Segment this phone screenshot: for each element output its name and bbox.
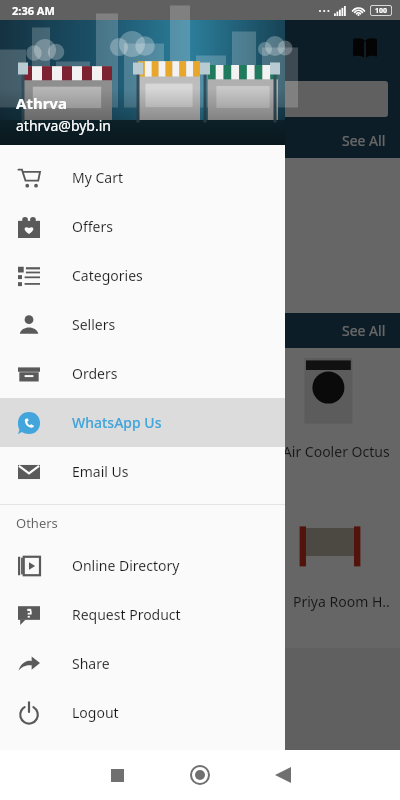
button[interactable]: Email Us [0,447,285,496]
button[interactable]: Sellers [0,300,285,349]
button[interactable]: Orders [0,349,285,398]
staticText: Categories [72,266,143,285]
staticText: See All [342,131,386,150]
button[interactable]: My Cart [0,153,285,202]
button[interactable]: Priya Room H.. [0,498,400,648]
button[interactable]: Recent apps [95,753,139,797]
button[interactable]: Back [261,753,305,797]
staticText: athrva@byb.in [16,116,111,135]
staticText: Others [16,514,58,532]
button[interactable]: Symphony Diet 22i Personal Air Cooler Oc… [0,348,400,498]
staticText: Orders [72,364,118,383]
button[interactable]: Categories [0,251,285,300]
button[interactable]: Online Directory [0,541,285,590]
button[interactable]: See All [342,321,386,340]
staticText: Priya Room H.. [293,592,390,611]
staticText: WhatsApp Us [72,413,162,432]
staticText: See All [342,321,386,340]
staticText: Sellers [72,315,116,334]
staticText: Email Us [72,462,129,481]
button[interactable]: Offers [0,202,285,251]
staticText: Offers [72,217,113,236]
staticText: Athrva [16,93,67,113]
button[interactable]: Logout [0,688,285,737]
staticText: My Cart [72,168,124,187]
button[interactable]: Share [0,639,285,688]
staticText: Request Product [72,605,181,624]
button[interactable]: Request Product [0,590,285,639]
staticText: 100 [375,6,388,16]
staticText: Symphony Diet 22i Personal Air Cooler Oc… [95,442,390,461]
staticText: Logout [72,703,119,722]
button[interactable] [12,81,388,117]
button[interactable]: See All [342,131,386,150]
staticText: Online Directory [72,556,180,575]
button[interactable]: Catalog [348,31,382,65]
staticText: Share [72,654,110,673]
staticText: 2:36 AM [12,3,55,18]
button[interactable]: WhatsApp Us [0,398,285,447]
button[interactable]: Home [178,753,222,797]
